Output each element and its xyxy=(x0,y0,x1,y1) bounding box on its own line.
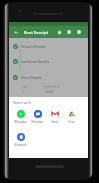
staticText: Share with xyxy=(13,100,31,105)
staticText: ₹ - xyxy=(22,90,26,94)
button[interactable]: Rent Details xyxy=(9,73,88,82)
button[interactable]: Gmail xyxy=(46,110,63,124)
staticText: Drive xyxy=(63,120,80,124)
staticText: Landlord Details xyxy=(21,59,50,64)
staticText: Cost xyxy=(22,85,28,89)
staticText: Messages xyxy=(29,120,46,124)
button[interactable]: Back xyxy=(12,28,21,37)
button[interactable]: Favourite xyxy=(54,27,64,37)
staticText: Rent Receipt xyxy=(24,30,49,35)
button[interactable]: Download xyxy=(64,27,74,37)
button[interactable]: WhatsApp xyxy=(12,110,29,124)
button[interactable]: Landlord Details xyxy=(9,57,88,66)
button[interactable]: Drive xyxy=(63,110,80,124)
button[interactable]: Messages xyxy=(29,110,46,124)
staticText: ₹2500 xyxy=(45,90,54,94)
staticText: Bluetooth xyxy=(12,143,29,147)
staticText: Monthly Rent Amount xyxy=(43,85,69,89)
staticText: Rent Details xyxy=(21,75,42,80)
button[interactable]: Tenant Details xyxy=(9,42,88,51)
staticText: WhatsApp xyxy=(12,120,29,124)
button[interactable]: More options xyxy=(74,27,84,37)
staticText: Gmail xyxy=(46,120,63,124)
button[interactable]: Bluetooth xyxy=(12,133,29,147)
staticText: Tenant Details xyxy=(21,44,46,49)
